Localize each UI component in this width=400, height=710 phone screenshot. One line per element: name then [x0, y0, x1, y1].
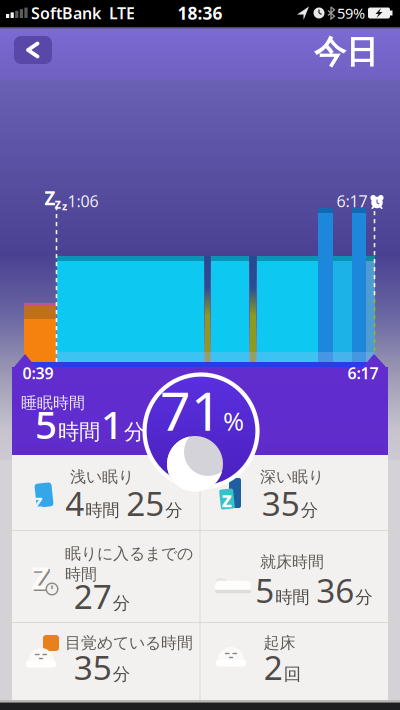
staticText: 2 [264, 645, 283, 689]
staticText: 25 [126, 481, 164, 525]
staticText: 35 [74, 645, 112, 689]
staticText: 目覚めている時間 [65, 633, 193, 653]
staticText: 36 [316, 568, 354, 612]
staticText: 睡眠時間 [21, 393, 85, 413]
staticText: 眠りに入るまでの [65, 544, 193, 563]
staticText: z [33, 488, 43, 514]
staticText: 1 [101, 398, 123, 450]
staticText: 起床 [263, 633, 295, 653]
staticText: z [62, 199, 67, 213]
staticText: % [223, 404, 244, 438]
staticText: Z [44, 186, 55, 210]
staticText: 就床時間 [260, 552, 324, 572]
staticText: 5 [35, 398, 57, 450]
staticText: 6:17 [347, 362, 378, 384]
staticText: 深い眠り [260, 467, 324, 487]
staticText: 浅い眠り [70, 467, 134, 487]
staticText: 時間 [85, 499, 119, 521]
staticText: 1:06 [67, 190, 98, 212]
staticText: 回 [284, 663, 301, 685]
button[interactable] [14, 36, 52, 64]
staticText: 35 [262, 481, 300, 525]
staticText: 時間 [275, 586, 309, 608]
staticText: 時間 [65, 564, 97, 584]
staticText: 時間 [58, 419, 100, 445]
staticText: 71 [160, 375, 222, 445]
staticText: 4 [65, 481, 84, 525]
staticText: 0:39 [22, 362, 53, 384]
staticText: 59% [337, 3, 365, 23]
staticText: 18:36 [177, 1, 222, 24]
staticText: Z [33, 559, 51, 599]
staticText: 分 [165, 499, 182, 521]
staticText: 分 [113, 592, 130, 614]
staticText: 6:17 [336, 190, 367, 212]
staticText: Z [31, 557, 49, 598]
staticText: z [54, 195, 61, 212]
staticText: 今日 [314, 32, 378, 72]
staticText: 分 [124, 419, 145, 445]
staticText: z [221, 485, 232, 513]
staticText: 分 [301, 499, 318, 521]
staticText: 分 [355, 586, 372, 608]
staticText: 分 [113, 663, 130, 685]
staticText: SoftBank LTE [31, 2, 135, 24]
staticText: 5 [255, 568, 274, 612]
staticText: 27 [74, 574, 112, 618]
